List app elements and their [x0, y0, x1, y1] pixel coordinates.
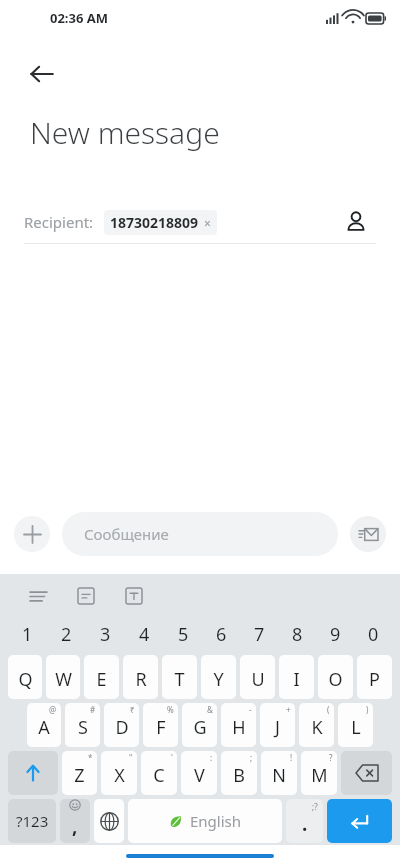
staticText: Q — [18, 667, 33, 692]
staticText: L — [351, 715, 361, 740]
staticText: C — [153, 763, 165, 788]
staticText: @ — [49, 704, 57, 715]
button[interactable]: Add attachment — [14, 516, 50, 552]
button[interactable]: 9 — [316, 618, 354, 650]
staticText: New message — [30, 112, 220, 153]
staticText: ; — [250, 752, 253, 763]
staticText: S — [78, 715, 88, 740]
staticText: U — [251, 667, 265, 692]
staticText: + — [286, 704, 291, 715]
staticText: ) — [366, 704, 369, 715]
button[interactable]: * — [62, 751, 97, 795]
button[interactable]: 7 — [240, 618, 278, 650]
staticText: ?123 — [16, 811, 49, 831]
staticText: : — [210, 752, 213, 763]
button[interactable]: W — [46, 655, 80, 699]
button[interactable]: ! — [261, 751, 297, 795]
button[interactable]: Clipboard — [70, 580, 102, 612]
staticText: X — [114, 763, 125, 788]
staticText: 5 — [178, 622, 189, 647]
button[interactable]: 6 — [202, 618, 240, 650]
staticText: P — [369, 667, 380, 692]
button[interactable]: Y — [201, 655, 236, 699]
staticText: D — [115, 715, 129, 740]
button[interactable]: O — [318, 655, 353, 699]
staticText: Recipient: — [24, 212, 94, 232]
button[interactable]: ;? — [286, 799, 323, 843]
button[interactable]: U — [240, 655, 275, 699]
button[interactable]: 4 — [125, 618, 164, 650]
button[interactable]: % — [143, 703, 178, 747]
button[interactable]: Q — [8, 655, 42, 699]
staticText: A — [38, 715, 50, 740]
staticText: B — [233, 763, 245, 788]
staticText: F — [156, 715, 166, 740]
button[interactable]: + — [260, 703, 295, 747]
button[interactable]: E — [84, 655, 119, 699]
staticText: J — [275, 715, 280, 740]
staticText: " — [129, 752, 133, 763]
staticText: & — [207, 704, 213, 715]
button[interactable]: ( — [299, 703, 334, 747]
staticText: 6 — [216, 622, 227, 647]
staticText: E — [96, 667, 107, 692]
button[interactable]: T — [162, 655, 197, 699]
staticText: % — [167, 704, 174, 715]
button[interactable]: Enter — [327, 799, 392, 843]
staticText: ' — [171, 752, 173, 763]
button[interactable]: Shift — [8, 751, 58, 795]
button[interactable]: ; — [221, 751, 257, 795]
button[interactable]: ' — [141, 751, 177, 795]
staticText: K — [311, 715, 323, 740]
staticText: V — [194, 763, 205, 788]
staticText: ₹ — [130, 704, 135, 715]
staticText: * — [88, 752, 93, 763]
staticText: O — [328, 667, 343, 692]
button[interactable]: I — [279, 655, 314, 699]
button[interactable]: Back — [18, 50, 66, 98]
staticText: W — [55, 667, 72, 692]
button[interactable]: Send — [350, 516, 386, 552]
staticText: 9 — [330, 622, 341, 647]
button[interactable]: 3 — [86, 618, 125, 650]
button[interactable]: ₹ — [104, 703, 139, 747]
button[interactable]: R — [123, 655, 158, 699]
staticText: 18730218809 — [110, 213, 199, 232]
staticText: ! — [290, 752, 293, 763]
button[interactable]: Emoji and comma — [60, 799, 90, 843]
button[interactable]: ?123 — [8, 799, 56, 843]
button[interactable]: Menu — [22, 580, 54, 612]
staticText: ? — [329, 752, 333, 763]
button[interactable]: : — [181, 751, 217, 795]
staticText: Y — [213, 667, 224, 692]
button[interactable]: 2 — [47, 618, 86, 650]
staticText: G — [193, 715, 207, 740]
button[interactable]: Сообщение — [62, 512, 338, 556]
staticText: Z — [74, 763, 85, 788]
staticText: T — [174, 667, 185, 692]
staticText: 4 — [139, 622, 150, 647]
button[interactable]: & — [182, 703, 217, 747]
button[interactable]: Text options — [118, 580, 150, 612]
button[interactable]: - — [221, 703, 256, 747]
button[interactable]: 8 — [278, 618, 316, 650]
button[interactable]: 1 — [8, 618, 47, 650]
button[interactable]: Change language — [94, 799, 124, 843]
button[interactable]: Space — [128, 799, 282, 843]
button[interactable]: 5 — [164, 618, 202, 650]
staticText: × — [204, 215, 211, 231]
button[interactable]: ? — [301, 751, 337, 795]
button[interactable]: 18730218809 — [104, 210, 217, 235]
button[interactable]: # — [65, 703, 100, 747]
staticText: I — [293, 667, 300, 692]
button[interactable]: 0 — [354, 618, 392, 650]
staticText: - — [249, 704, 252, 715]
button[interactable]: ) — [338, 703, 373, 747]
staticText: 3 — [100, 622, 111, 647]
button[interactable]: Backspace — [341, 751, 392, 795]
button[interactable]: @ — [27, 703, 61, 747]
button[interactable]: P — [357, 655, 392, 699]
button[interactable]: " — [101, 751, 137, 795]
button[interactable]: Pick contact — [336, 202, 376, 242]
staticText: 7 — [254, 622, 265, 647]
